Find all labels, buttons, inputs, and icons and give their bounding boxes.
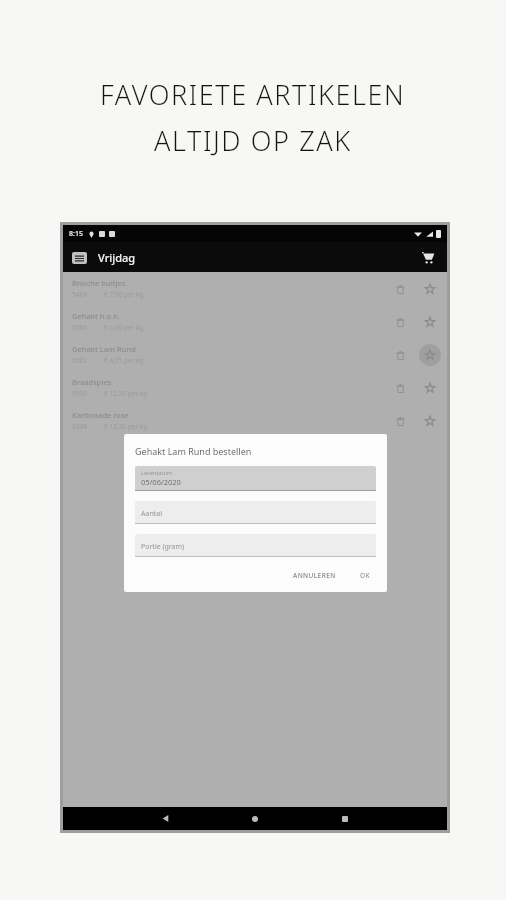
button[interactable]: Favoriet	[419, 311, 441, 333]
button[interactable]: Verwijderen	[389, 311, 411, 333]
button[interactable]: ANNULEREN	[288, 568, 341, 583]
staticText: 9535	[72, 389, 87, 398]
button[interactable]: Favoriet	[419, 410, 441, 432]
staticText: Gehakt Lam Rund	[72, 344, 136, 354]
staticText: € 12,50 per kg	[104, 389, 148, 398]
button[interactable]: OK	[355, 568, 376, 583]
staticText: Braadspies	[72, 377, 112, 387]
staticText: ANNULEREN	[293, 571, 336, 580]
button[interactable]: Menu	[72, 252, 87, 264]
staticText: Leverdatum	[141, 469, 172, 476]
button[interactable]: Verwijderen	[389, 344, 411, 366]
staticText: 6566	[72, 323, 87, 332]
button[interactable]: Favoriet	[419, 344, 441, 366]
staticText: FAVORIETE ARTIKELEN	[100, 76, 406, 113]
staticText: 5464	[72, 290, 87, 299]
button[interactable]: Recente apps	[330, 807, 360, 830]
staticText: 8:15	[69, 229, 83, 239]
button[interactable]: Brioche buitjes	[63, 272, 447, 305]
staticText: Karbonade rose	[72, 410, 129, 420]
button[interactable]: Terug	[150, 807, 180, 830]
button[interactable]: Home	[240, 807, 270, 830]
staticText: 2048	[72, 422, 87, 431]
staticText: € 6,90 per kg	[104, 323, 144, 332]
button[interactable]: Aantal	[135, 501, 376, 524]
staticText: ALTIJD OP ZAK	[154, 122, 352, 159]
button[interactable]: Gehakt h.o.h.	[63, 305, 447, 338]
button[interactable]: Favoriet	[419, 278, 441, 300]
staticText: Gehakt Lam Rund bestellen	[135, 445, 252, 457]
button[interactable]: Verwijderen	[389, 410, 411, 432]
button[interactable]: Winkelwagen	[417, 246, 439, 268]
button[interactable]: Favoriet	[419, 377, 441, 399]
staticText: Gehakt h.o.h.	[72, 311, 120, 321]
button[interactable]: Portie (gram)	[135, 534, 376, 557]
staticText: Aantal	[141, 509, 162, 519]
staticText: OK	[360, 571, 371, 580]
button[interactable]: Karbonade rose	[63, 404, 447, 437]
staticText: € 13,30 per kg	[104, 422, 148, 431]
staticText: € 7,90 per kg	[104, 290, 144, 299]
staticText: € 4,75 per kg	[104, 356, 144, 365]
staticText: Vrijdag	[98, 250, 136, 265]
button[interactable]: Gehakt Lam Rund	[63, 338, 447, 371]
button[interactable]: Leverdatum	[135, 466, 376, 491]
button[interactable]: Braadspies	[63, 371, 447, 404]
staticText: Portie (gram)	[141, 542, 185, 552]
button[interactable]: Verwijderen	[389, 278, 411, 300]
staticText: Brioche buitjes	[72, 278, 126, 288]
staticText: 05/06/2020	[141, 477, 181, 487]
button[interactable]: Verwijderen	[389, 377, 411, 399]
staticText: 6563	[72, 356, 87, 365]
